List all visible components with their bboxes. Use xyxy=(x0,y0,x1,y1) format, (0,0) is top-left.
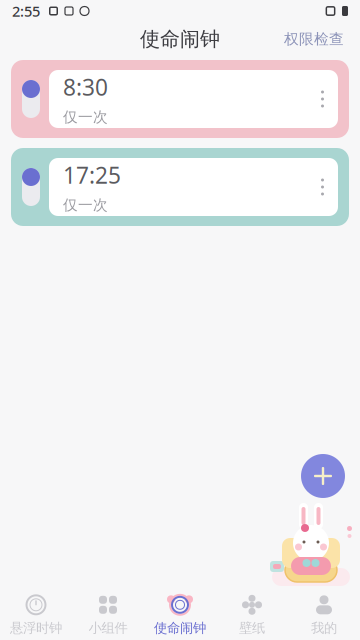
button[interactable]: 17:25 xyxy=(11,148,349,226)
staticText: 悬浮时钟 xyxy=(10,620,62,636)
button[interactable]: Toggle alarm 8:30 xyxy=(11,70,49,128)
button[interactable]: 我的 xyxy=(288,588,360,640)
staticText: 我的 xyxy=(311,620,337,636)
button[interactable]: 使命闹钟 xyxy=(144,588,216,640)
button[interactable]: More options xyxy=(311,76,334,121)
button[interactable]: 小组件 xyxy=(72,588,144,640)
staticText: 仅一次 xyxy=(63,108,108,126)
staticText: 壁纸 xyxy=(239,620,265,636)
staticText: 2:55 xyxy=(12,1,40,21)
button[interactable]: 壁纸 xyxy=(216,588,288,640)
staticText: 使命闹钟 xyxy=(140,27,220,51)
button[interactable]: Add alarm xyxy=(301,454,345,498)
button[interactable]: More options xyxy=(311,164,334,209)
button[interactable]: 权限检查 xyxy=(274,22,354,56)
button[interactable]: 8:30 xyxy=(11,60,349,138)
button[interactable]: Toggle alarm 17:25 xyxy=(11,158,49,216)
staticText: 使命闹钟 xyxy=(154,620,206,636)
button[interactable]: 悬浮时钟 xyxy=(0,588,72,640)
staticText: 8:30 xyxy=(63,72,108,102)
staticText: 小组件 xyxy=(88,620,127,636)
staticText: 17:25 xyxy=(63,160,121,190)
staticText: 权限检查 xyxy=(284,30,344,48)
staticText: 仅一次 xyxy=(63,196,108,214)
